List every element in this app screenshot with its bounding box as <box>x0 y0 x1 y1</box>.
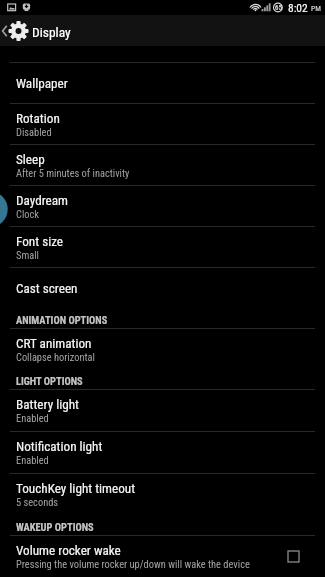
staticText: Wallpaper <box>16 76 68 91</box>
staticText: 5 seconds <box>16 496 59 508</box>
button[interactable]: Sleep <box>0 145 325 185</box>
staticText: After 5 minutes of inactivity <box>16 167 130 179</box>
staticText: ANIMATION OPTIONS <box>16 314 108 326</box>
button[interactable]: Notification light <box>0 432 325 473</box>
button[interactable]: Daydream <box>0 186 325 226</box>
button[interactable]: Font size <box>0 227 325 267</box>
staticText: Battery light <box>16 397 79 412</box>
button[interactable]: Cast screen <box>0 268 325 308</box>
staticText: TouchKey light timeout <box>16 481 136 496</box>
button[interactable]: Volume rocker wake checkbox <box>288 551 299 562</box>
staticText: Rotation <box>16 111 60 126</box>
staticText: PM <box>311 4 321 13</box>
staticText: Enabled <box>16 454 49 466</box>
staticText: Disabled <box>16 126 52 138</box>
staticText: Enabled <box>16 412 49 424</box>
button[interactable]: Volume rocker wake <box>0 536 325 577</box>
staticText: Volume rocker wake <box>16 543 121 558</box>
staticText: CRT animation <box>16 336 92 351</box>
staticText: 65 <box>275 4 282 12</box>
staticText: Small <box>16 249 39 261</box>
button[interactable]: Wallpaper <box>0 63 325 103</box>
button[interactable]: CRT animation <box>0 329 325 369</box>
staticText: Daydream <box>16 193 69 208</box>
staticText: Font size <box>16 234 64 249</box>
staticText: Cast screen <box>16 281 78 296</box>
staticText: Notification light <box>16 439 103 454</box>
button[interactable]: TouchKey light timeout <box>0 474 325 515</box>
button[interactable]: Navigate up, Display <box>0 15 325 46</box>
staticText: Collapse horizontal <box>16 351 95 363</box>
button[interactable]: Battery light <box>0 390 325 431</box>
staticText: LIGHT OPTIONS <box>16 375 83 387</box>
staticText: Clock <box>16 208 39 220</box>
staticText: 8:02 <box>288 1 308 14</box>
staticText: Display <box>32 24 71 40</box>
button[interactable]: Rotation <box>0 104 325 144</box>
staticText: Pressing the volume rocker up/down will … <box>16 558 250 570</box>
staticText: WAKEUP OPTIONS <box>16 521 94 533</box>
staticText: Sleep <box>16 152 45 167</box>
